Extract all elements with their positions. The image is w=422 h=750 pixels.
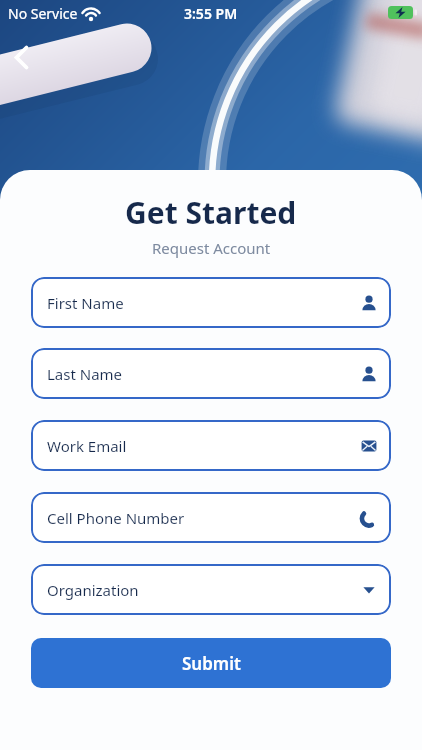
staticText: 3:55 PM <box>184 4 238 23</box>
button[interactable]: First Name <box>31 277 391 328</box>
button[interactable] <box>2 37 42 77</box>
staticText: Cell Phone Number <box>47 508 359 528</box>
button[interactable]: Submit <box>31 638 391 688</box>
button[interactable]: Organization <box>31 564 391 615</box>
staticText: No Service <box>8 4 78 23</box>
button[interactable]: Work Email <box>31 420 391 471</box>
staticText: Request Account <box>152 238 271 258</box>
button[interactable]: Last Name <box>31 348 391 399</box>
staticText: First Name <box>47 293 359 313</box>
staticText: Get Started <box>125 192 297 233</box>
staticText: Work Email <box>47 436 359 456</box>
staticText: Organization <box>47 580 359 600</box>
button[interactable]: Cell Phone Number <box>31 492 391 543</box>
staticText: Last Name <box>47 364 359 384</box>
staticText: Submit <box>182 652 241 675</box>
